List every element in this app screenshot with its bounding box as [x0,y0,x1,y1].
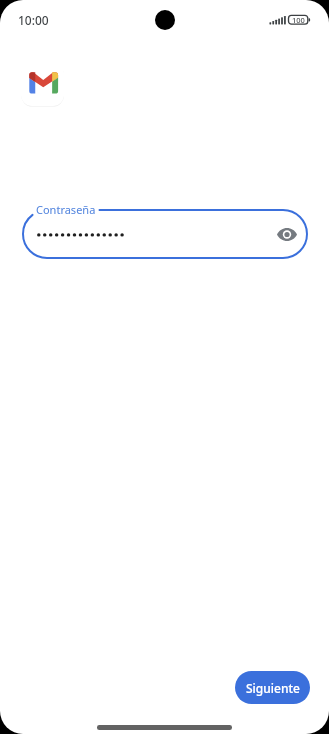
staticText: Siguiente [246,680,300,696]
staticText: 100 [292,15,305,25]
button[interactable]: Mostrar contrasena [272,220,301,249]
staticText: 10:00 [18,12,49,28]
button[interactable]: Siguiente [235,671,310,704]
staticText: Contraseña [36,202,96,217]
